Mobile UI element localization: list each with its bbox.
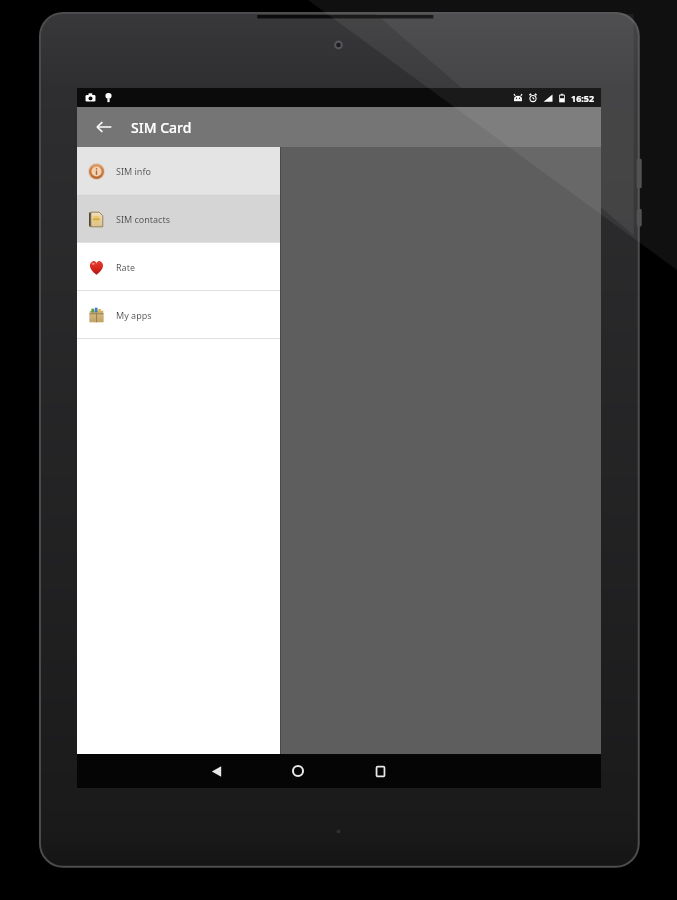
staticText: SIM Card (131, 118, 192, 137)
button[interactable]: Rate (77, 243, 280, 290)
button[interactable]: Navigate up (89, 112, 119, 142)
staticText: Rate (116, 261, 135, 273)
staticText: SIM contacts (116, 213, 171, 225)
staticText: SIM info (116, 165, 151, 177)
staticText: 16:52 (571, 92, 595, 104)
staticText: My apps (116, 309, 152, 321)
button[interactable]: SIM info (77, 147, 280, 194)
button[interactable]: SIM contacts (77, 195, 280, 242)
button[interactable]: Back (199, 754, 233, 788)
button[interactable]: Home (281, 754, 315, 788)
button[interactable]: My apps (77, 291, 280, 338)
button[interactable]: Recent apps (363, 754, 397, 788)
